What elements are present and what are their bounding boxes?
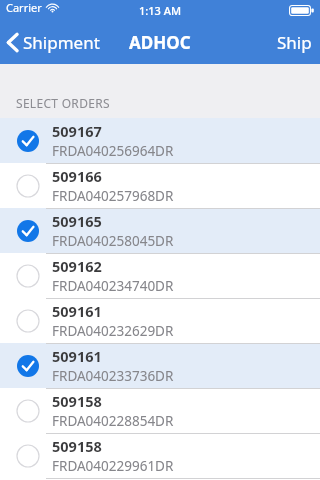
staticText: SELECT ORDERS xyxy=(16,95,110,111)
staticText: 509162 xyxy=(52,256,102,276)
other: Not selected xyxy=(16,309,40,333)
staticText: FRDA040258045DR xyxy=(52,232,174,250)
other: Not selected xyxy=(16,399,40,423)
other: Selected xyxy=(16,219,40,243)
staticText: FRDA040232629DR xyxy=(52,322,174,340)
button[interactable]: Not selected xyxy=(0,478,320,480)
button[interactable]: Shipment xyxy=(0,25,108,60)
button[interactable]: Not selected xyxy=(0,388,320,433)
staticText: FRDA040233736DR xyxy=(52,367,174,385)
staticText: ADHOC xyxy=(129,31,191,54)
staticText: 509158 xyxy=(52,391,102,411)
staticText: 509161 xyxy=(52,346,102,366)
staticText: FRDA040229961DR xyxy=(52,457,174,475)
staticText: 509165 xyxy=(52,211,102,231)
staticText: FRDA040228854DR xyxy=(52,412,174,430)
button[interactable]: Not selected xyxy=(0,298,320,343)
button[interactable]: Selected xyxy=(0,343,320,388)
staticText: FRDA040256964DR xyxy=(52,142,174,160)
staticText: Ship xyxy=(277,31,312,54)
staticText: 1:13 AM xyxy=(139,3,182,18)
staticText: 509166 xyxy=(52,166,102,186)
button[interactable]: Ship xyxy=(269,23,320,62)
staticText: 509157 xyxy=(52,478,102,480)
button[interactable]: Not selected xyxy=(0,433,320,478)
staticText: 509161 xyxy=(52,301,102,321)
staticText: Shipment xyxy=(23,31,100,54)
button[interactable]: Not selected xyxy=(0,253,320,298)
other: Selected xyxy=(16,129,40,153)
other: Not selected xyxy=(16,444,40,468)
staticText: 509167 xyxy=(52,121,102,141)
button[interactable]: Selected xyxy=(0,208,320,253)
staticText: Carrier xyxy=(6,0,42,15)
other: Not selected xyxy=(16,174,40,198)
other: Not selected xyxy=(16,264,40,288)
staticText: FRDA040257968DR xyxy=(52,187,174,205)
staticText: FRDA040234740DR xyxy=(52,277,174,295)
other: Selected xyxy=(16,354,40,378)
button[interactable]: Not selected xyxy=(0,163,320,208)
button[interactable]: Selected xyxy=(0,118,320,163)
staticText: 509158 xyxy=(52,436,102,456)
